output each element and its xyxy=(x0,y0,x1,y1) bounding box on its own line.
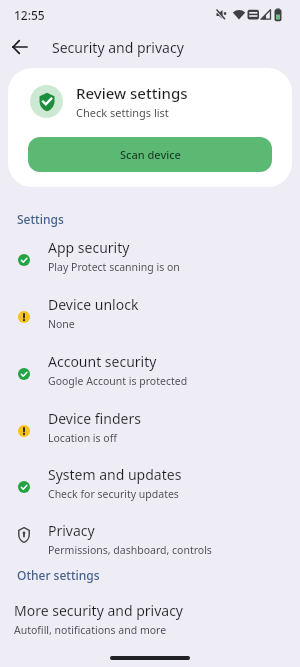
staticText: Scan device xyxy=(120,147,181,162)
button[interactable] xyxy=(0,30,40,64)
staticText: Check settings list xyxy=(76,105,169,120)
staticText: Review settings xyxy=(76,83,188,103)
button[interactable]: Scan device xyxy=(28,137,272,172)
button[interactable]: More security and privacy xyxy=(0,601,300,637)
staticText: Play Protect scanning is on xyxy=(48,260,180,274)
staticText: Device unlock xyxy=(48,295,139,314)
button[interactable]: Device finders xyxy=(0,398,300,455)
button[interactable]: Account security xyxy=(0,341,300,398)
staticText: Other settings xyxy=(17,567,100,583)
staticText: Account security xyxy=(48,352,157,371)
staticText: 12:55 xyxy=(14,7,45,23)
staticText: App security xyxy=(48,238,130,257)
staticText: Privacy xyxy=(48,521,95,540)
staticText: More security and privacy xyxy=(14,601,183,620)
staticText: System and updates xyxy=(48,465,182,484)
staticText: None xyxy=(48,317,75,331)
staticText: Autofill, notifications and more xyxy=(14,623,167,637)
staticText: Location is off xyxy=(48,431,117,445)
staticText: Device finders xyxy=(48,409,141,428)
button[interactable]: System and updates xyxy=(0,455,300,511)
button[interactable]: App security xyxy=(0,227,300,284)
staticText: Settings xyxy=(17,211,64,227)
button[interactable]: Privacy xyxy=(0,511,300,567)
staticText: Check for security updates xyxy=(48,487,179,501)
button[interactable]: Device unlock xyxy=(0,284,300,341)
staticText: Security and privacy xyxy=(52,38,184,57)
staticText: Google Account is protected xyxy=(48,374,188,388)
staticText: Permissions, dashboard, controls xyxy=(48,543,212,557)
